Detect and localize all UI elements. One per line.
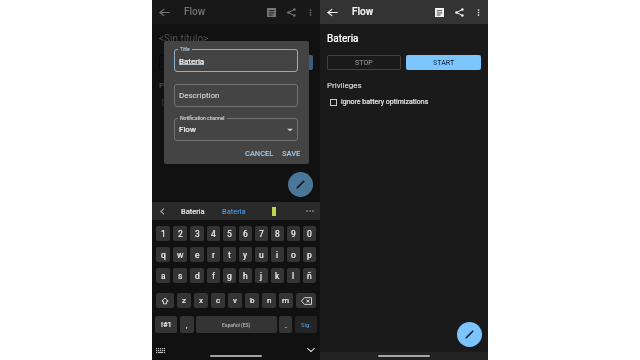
button[interactable]: 2 (173, 226, 187, 241)
button[interactable]: a (156, 268, 170, 283)
button[interactable]: Edit (457, 322, 482, 347)
button[interactable]: Flow (174, 118, 298, 141)
staticText: Description (179, 91, 220, 100)
button[interactable]: l (287, 268, 300, 283)
button[interactable]: 1 (156, 226, 170, 241)
button[interactable]: Hide keyboard (307, 348, 315, 352)
button[interactable]: m (279, 293, 293, 308)
button[interactable] (156, 293, 174, 308)
staticText: h (243, 271, 248, 281)
button[interactable]: CANCEL (242, 147, 277, 160)
button[interactable]: g (223, 268, 236, 283)
staticText: Title (180, 46, 190, 52)
button[interactable]: SAVE (279, 147, 304, 160)
button[interactable]: More options (304, 205, 316, 217)
staticText: 4 (211, 229, 216, 239)
button[interactable]: Edit (288, 172, 313, 197)
staticText: m (282, 296, 290, 305)
button[interactable]: 7 (255, 226, 268, 241)
staticText: Sig. (301, 321, 311, 328)
button[interactable]: More options (470, 4, 487, 21)
staticText: l (292, 271, 295, 281)
button[interactable]: Keyboard settings (156, 348, 167, 354)
staticText: Flow (179, 125, 196, 134)
staticText: SAVE (282, 149, 301, 158)
button[interactable]: Back (324, 4, 341, 21)
staticText: 5 (227, 229, 232, 239)
button[interactable]: z (177, 293, 191, 308)
staticText: q (161, 250, 166, 260)
button[interactable]: o (287, 247, 300, 262)
button[interactable]: i (271, 247, 284, 262)
staticText: Bateria (179, 57, 205, 66)
button[interactable]: !#1 (155, 316, 177, 333)
button[interactable]: ignore battery optimizations (330, 98, 488, 106)
button[interactable]: Sig. (295, 316, 317, 333)
button[interactable]: f (207, 268, 220, 283)
staticText: <Sin título> (159, 33, 209, 45)
button[interactable]: 5 (223, 226, 236, 241)
button[interactable]: u (255, 247, 268, 262)
button[interactable]: ignore battery optimizations (162, 98, 320, 106)
button[interactable]: Notes (263, 4, 280, 21)
button[interactable] (296, 293, 316, 308)
button[interactable]: s (173, 268, 187, 283)
staticText: START (433, 59, 455, 67)
button[interactable]: Back (156, 4, 173, 21)
staticText: 0 (307, 229, 312, 239)
staticText: Privileges (159, 81, 194, 90)
button[interactable]: x (194, 293, 208, 308)
button[interactable]: v (228, 293, 242, 308)
staticText: 1 (161, 229, 166, 239)
button[interactable]: , (180, 316, 194, 333)
staticText: STOP (187, 59, 205, 67)
button[interactable]: t (223, 247, 236, 262)
button[interactable]: Notes (431, 4, 448, 21)
button[interactable]: 8 (271, 226, 284, 241)
button[interactable]: n (262, 293, 276, 308)
button[interactable]: b (245, 293, 259, 308)
button[interactable]: 4 (207, 226, 220, 241)
button[interactable]: 6 (239, 226, 252, 241)
button[interactable]: Description (174, 84, 298, 107)
button[interactable]: Español (ES) (196, 316, 277, 333)
staticText: Español (ES) (222, 322, 251, 328)
button[interactable]: r (207, 247, 220, 262)
button[interactable]: Share (451, 4, 468, 21)
staticText: ñ (307, 271, 312, 281)
staticText: a (161, 271, 166, 281)
staticText: b (250, 296, 255, 305)
button[interactable]: ñ (303, 268, 316, 283)
button[interactable]: 3 (190, 226, 204, 241)
button[interactable]: j (255, 268, 268, 283)
button[interactable]: STOP (159, 55, 233, 70)
button[interactable]: START (406, 55, 481, 70)
staticText: x (199, 296, 203, 305)
button[interactable]: More options (302, 4, 319, 21)
button[interactable]: y (239, 247, 252, 262)
button[interactable]: p (303, 247, 316, 262)
staticText: k (275, 271, 280, 281)
button[interactable]: h (239, 268, 252, 283)
button[interactable]: 9 (287, 226, 300, 241)
button[interactable]: c (211, 293, 225, 308)
staticText: y (243, 250, 248, 260)
staticText: c (216, 296, 221, 305)
button[interactable]: 0 (303, 226, 316, 241)
button[interactable]: q (156, 247, 170, 262)
button[interactable]: Share (283, 4, 300, 21)
staticText: Bateria (327, 33, 359, 45)
button[interactable]: e (190, 247, 204, 262)
staticText: Notification channel (180, 115, 225, 121)
button[interactable]: k (271, 268, 284, 283)
button[interactable]: START (238, 55, 313, 70)
staticText: Bateria (181, 207, 205, 216)
button[interactable]: . (279, 316, 292, 333)
button[interactable]: w (173, 247, 187, 262)
staticText: s (178, 271, 183, 281)
button[interactable]: STOP (327, 55, 401, 70)
button[interactable]: d (190, 268, 204, 283)
button[interactable]: Previous (157, 206, 168, 217)
staticText: r (212, 250, 215, 260)
